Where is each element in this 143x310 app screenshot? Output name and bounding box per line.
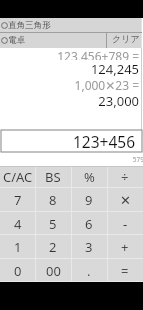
button[interactable]: - xyxy=(107,212,143,235)
button[interactable]: 3 xyxy=(71,235,107,259)
button[interactable]: Select mode xyxy=(0,33,106,48)
staticText: 1 xyxy=(14,238,22,256)
button[interactable]: ✕ xyxy=(107,188,143,212)
button[interactable]: . xyxy=(71,259,107,282)
button[interactable]: クリア xyxy=(107,33,141,48)
staticText: 00 xyxy=(46,262,61,280)
staticText: 8 xyxy=(49,191,57,209)
staticText: + xyxy=(121,238,129,256)
staticText: C/AC xyxy=(3,168,33,186)
staticText: 124,245 xyxy=(90,60,139,77)
staticText: 579 xyxy=(1,155,143,164)
button[interactable]: ÷ xyxy=(107,166,143,188)
staticText: - xyxy=(123,215,128,233)
staticText: 23,000 xyxy=(98,92,139,109)
staticText: 2 xyxy=(49,238,57,256)
button[interactable]: Select mode xyxy=(0,18,142,33)
staticText: 123,456+789 = xyxy=(57,48,139,60)
staticText: クリア xyxy=(112,33,140,44)
button[interactable]: C/AC xyxy=(0,166,35,188)
button[interactable]: 0 xyxy=(0,259,35,282)
staticText: 0 xyxy=(14,262,22,280)
button[interactable]: + xyxy=(107,235,143,259)
staticText: 7 xyxy=(14,191,22,209)
other: Select mode xyxy=(1,37,8,44)
button[interactable]: 2 xyxy=(35,235,71,259)
staticText: 1,000✕23 = xyxy=(74,77,139,92)
staticText: 9 xyxy=(85,191,93,209)
staticText: 3 xyxy=(85,238,93,256)
button[interactable]: 9 xyxy=(71,188,107,212)
staticText: 4 xyxy=(14,215,22,233)
staticText: ✕ xyxy=(120,193,131,208)
staticText: 6 xyxy=(85,215,93,233)
button[interactable]: = xyxy=(107,259,143,282)
staticText: 電卓 xyxy=(8,35,25,46)
staticText: 直角三角形 xyxy=(8,20,51,31)
button[interactable]: % xyxy=(71,166,107,188)
button[interactable]: 7 xyxy=(0,188,35,212)
button[interactable]: 8 xyxy=(35,188,71,212)
staticText: % xyxy=(84,168,95,186)
button[interactable]: 123+456 xyxy=(1,130,142,152)
staticText: . xyxy=(87,262,91,280)
staticText: 123+456 xyxy=(73,131,136,152)
staticText: ÷ xyxy=(121,168,129,186)
other: Select mode xyxy=(1,22,8,29)
button[interactable]: 1 xyxy=(0,235,35,259)
staticText: 5 xyxy=(49,215,57,233)
button[interactable]: 4 xyxy=(0,212,35,235)
button[interactable]: 00 xyxy=(35,259,71,282)
button[interactable]: 5 xyxy=(35,212,71,235)
staticText: BS xyxy=(45,168,61,186)
staticText: = xyxy=(121,262,129,280)
button[interactable]: BS xyxy=(35,166,71,188)
button[interactable]: 6 xyxy=(71,212,107,235)
